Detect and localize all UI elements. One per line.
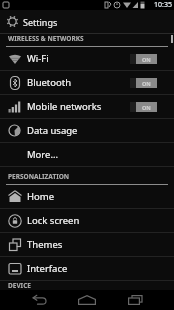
- staticText: Data usage: [27, 124, 78, 137]
- button[interactable]: Interface: [0, 257, 174, 280]
- button[interactable]: Home: [0, 185, 174, 208]
- button[interactable]: ON: [130, 102, 157, 112]
- button[interactable]: [119, 290, 151, 310]
- button[interactable]: Lock screen: [0, 209, 174, 232]
- button[interactable]: ON: [130, 54, 157, 64]
- staticText: Bluetooth: [27, 76, 72, 89]
- button[interactable]: [71, 290, 103, 310]
- staticText: Interface: [27, 262, 68, 275]
- staticText: ON: [142, 56, 151, 63]
- staticText: 10:35: [154, 0, 172, 10]
- staticText: Settings: [23, 16, 58, 28]
- staticText: WIRELESS & NETWORKS: [8, 34, 84, 43]
- staticText: DEVICE: [8, 281, 31, 290]
- staticText: ON: [142, 104, 151, 111]
- staticText: Lock screen: [27, 214, 80, 227]
- staticText: ON: [142, 80, 151, 87]
- button[interactable]: Mobile networks: [0, 95, 174, 118]
- staticText: PERSONALIZATION: [8, 172, 70, 181]
- button[interactable]: ON: [130, 78, 157, 88]
- staticText: More...: [27, 148, 59, 161]
- staticText: Mobile networks: [27, 100, 102, 113]
- button[interactable]: Wi-Fi: [0, 47, 174, 70]
- button[interactable]: [23, 290, 55, 310]
- staticText: Themes: [27, 238, 63, 251]
- button[interactable]: Themes: [0, 233, 174, 256]
- button[interactable]: Bluetooth: [0, 71, 174, 94]
- button[interactable]: Settings: [0, 10, 174, 33]
- staticText: Home: [27, 190, 55, 203]
- staticText: Wi-Fi: [27, 52, 49, 65]
- button[interactable]: More...: [0, 143, 174, 166]
- button[interactable]: Data usage: [0, 119, 174, 142]
